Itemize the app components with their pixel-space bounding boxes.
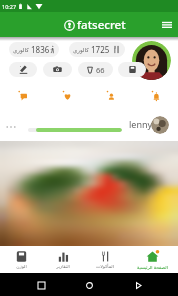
staticText: كالوري — [13, 47, 29, 53]
staticText: 1836 — [31, 44, 50, 55]
button[interactable]: Messages — [0, 86, 44, 104]
staticText: التقارير — [56, 264, 70, 269]
button[interactable]: التقارير — [42, 246, 84, 273]
staticText: 10:27 — [2, 3, 17, 10]
staticText: الوزن — [16, 264, 27, 269]
button[interactable]: More options — [3, 119, 19, 135]
staticText: 1725 — [91, 44, 110, 55]
button[interactable]: Edit entry — [9, 62, 37, 77]
button[interactable]: الوزن — [0, 246, 42, 273]
button[interactable]: Likes — [44, 86, 88, 104]
button[interactable]: Menu — [159, 17, 175, 33]
button[interactable]: كالوري — [9, 42, 59, 57]
staticText: fatsecret — [77, 17, 126, 33]
button[interactable]: Weigh in — [118, 62, 146, 77]
button[interactable]: كالوري — [69, 42, 125, 57]
staticText: الصفحة الرئيسية — [137, 264, 168, 270]
staticText: lenny — [129, 118, 153, 130]
button[interactable]: Back — [33, 277, 49, 293]
button[interactable]: الصفحة الرئيسية — [126, 246, 178, 273]
staticText: كالوري — [73, 47, 89, 53]
button[interactable]: Recents — [130, 277, 146, 293]
button[interactable]: المأكولات — [84, 246, 126, 273]
button[interactable]: Home — [81, 277, 97, 293]
button[interactable]: Friends — [88, 86, 133, 104]
button[interactable]: Notifications — [133, 86, 178, 104]
button[interactable]: Profile photo — [132, 41, 171, 80]
staticText: المأكولات — [96, 264, 114, 269]
staticText: 66 — [96, 65, 105, 75]
button[interactable]: Take photo — [43, 62, 72, 77]
button[interactable]: lenny profile — [151, 116, 169, 134]
button[interactable]: 66 — [78, 62, 113, 77]
